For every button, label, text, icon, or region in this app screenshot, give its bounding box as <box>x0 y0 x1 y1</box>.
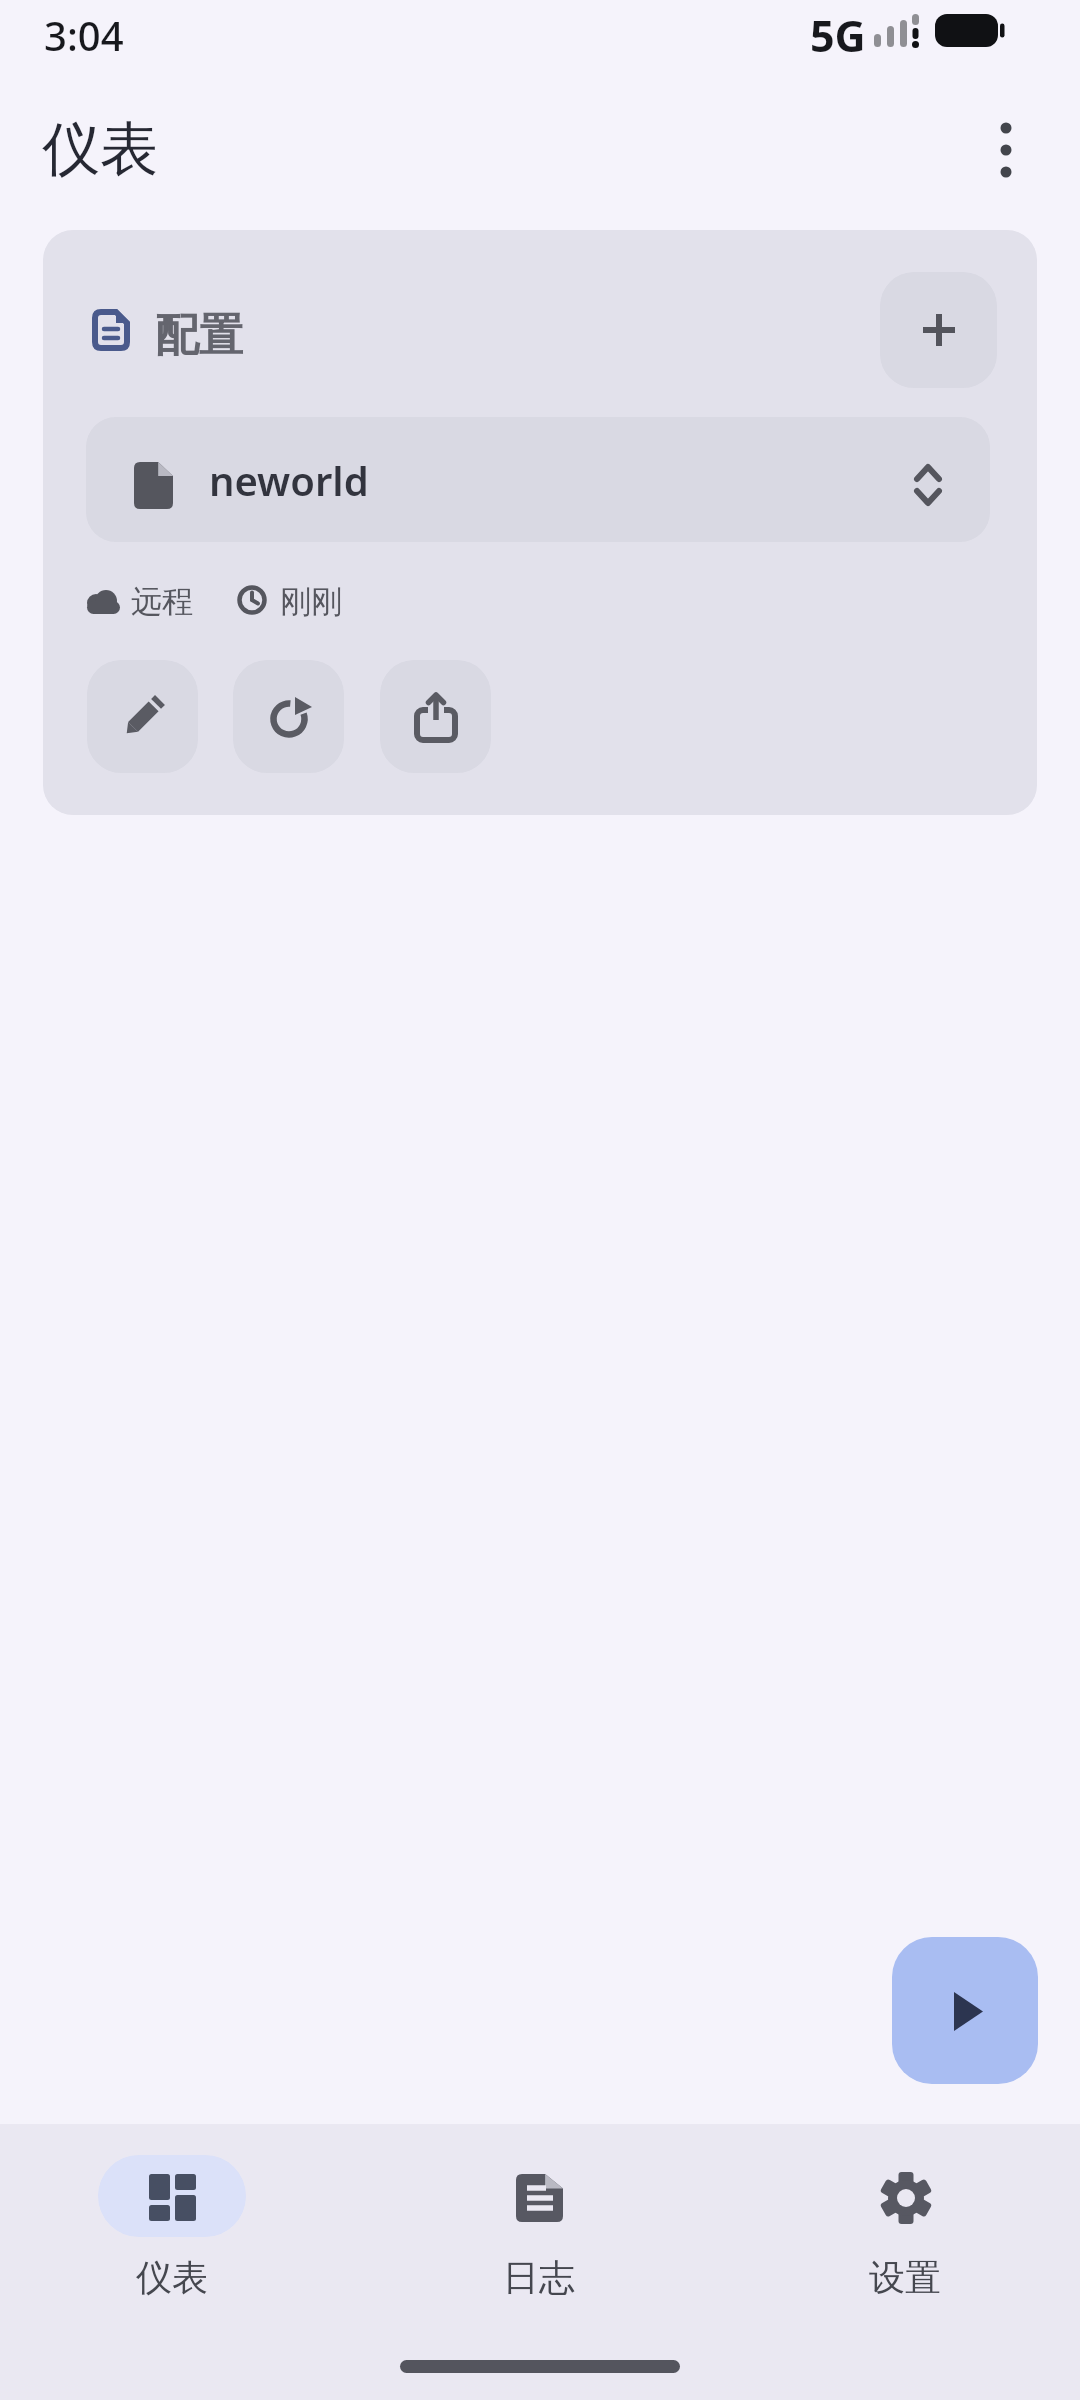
button[interactable]: 日志 <box>429 2144 649 2304</box>
button[interactable]: 设置 <box>795 2144 1015 2304</box>
button[interactable]: neworld <box>86 417 990 542</box>
staticText: neworld <box>209 453 369 507</box>
button[interactable] <box>976 118 1036 182</box>
staticText: 配置 <box>155 308 243 363</box>
staticText: 设置 <box>869 2255 941 2300</box>
staticText: 5G <box>810 6 866 65</box>
button[interactable] <box>87 660 198 773</box>
button[interactable]: 仪表 <box>62 2144 282 2304</box>
staticText: 远程 <box>131 582 193 621</box>
button[interactable] <box>233 660 344 773</box>
button[interactable] <box>880 272 997 388</box>
staticText: 3:04 <box>44 8 124 62</box>
staticText: 仪表 <box>42 113 158 186</box>
button[interactable] <box>892 1937 1038 2084</box>
button[interactable] <box>380 660 491 773</box>
staticText: 日志 <box>503 2255 575 2300</box>
staticText: 仪表 <box>136 2255 208 2300</box>
staticText: 刚刚 <box>280 582 342 621</box>
